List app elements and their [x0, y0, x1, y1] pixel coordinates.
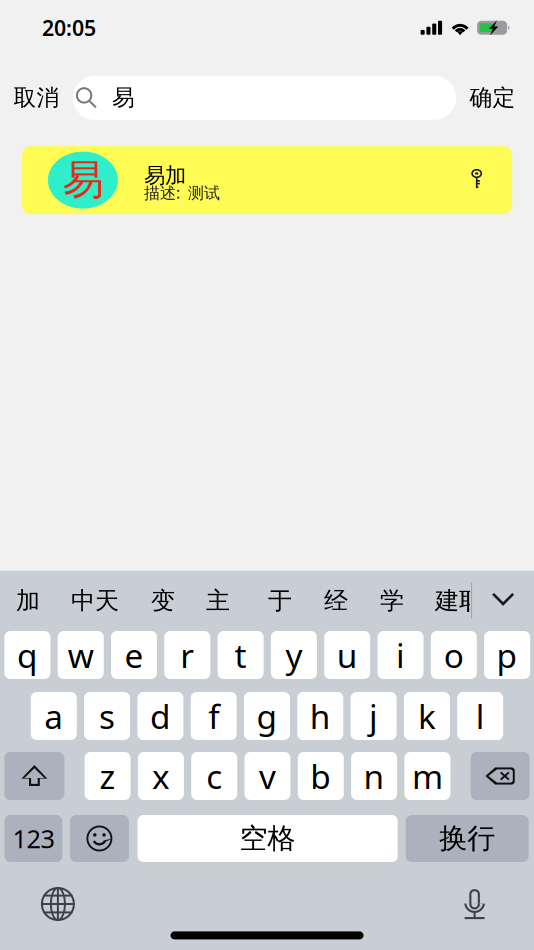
button[interactable]: a	[31, 692, 77, 740]
button[interactable]: o	[431, 631, 477, 679]
staticText: b	[310, 754, 331, 798]
button[interactable]: c	[191, 752, 237, 800]
button[interactable]: Shift	[4, 752, 64, 800]
staticText: 于	[268, 586, 292, 616]
staticText: l	[476, 694, 485, 738]
staticText: 确定	[470, 84, 516, 112]
staticText: o	[444, 633, 464, 677]
button[interactable]: g	[244, 692, 290, 740]
button[interactable]: Next keyboard	[40, 886, 76, 922]
staticText: 加	[16, 586, 40, 616]
button[interactable]: 中天	[71, 581, 151, 621]
staticText: c	[206, 754, 222, 798]
staticText: u	[337, 633, 358, 677]
staticText: 换行	[439, 821, 495, 856]
staticText: i	[396, 633, 405, 677]
staticText: 中天	[71, 586, 119, 616]
staticText: 学	[380, 586, 404, 616]
staticText: t	[235, 633, 247, 677]
staticText: n	[364, 754, 385, 798]
button[interactable]: More candidates	[492, 590, 514, 612]
staticText: 123	[12, 822, 54, 855]
button[interactable]: Emoji	[70, 815, 129, 862]
button[interactable]: 确定	[469, 76, 516, 120]
button[interactable]: 建耶	[435, 581, 470, 621]
staticText: s	[99, 694, 115, 738]
button[interactable]: t	[218, 631, 264, 679]
button[interactable]: 于	[268, 581, 324, 621]
button[interactable]: s	[84, 692, 130, 740]
button[interactable]: 加	[16, 581, 71, 621]
button[interactable]: 123	[4, 815, 62, 862]
button[interactable]: k	[404, 692, 450, 740]
staticText: h	[310, 694, 331, 738]
button[interactable]: j	[351, 692, 397, 740]
button[interactable]: q	[4, 631, 50, 679]
button[interactable]: Delete	[471, 752, 530, 800]
button[interactable]: u	[324, 631, 370, 679]
staticText: 变	[151, 586, 175, 616]
button[interactable]: i	[377, 631, 423, 679]
staticText: x	[152, 754, 170, 798]
button[interactable]: m	[404, 752, 450, 800]
button[interactable]: 易	[22, 146, 512, 214]
button[interactable]: 换行	[406, 815, 529, 862]
button[interactable]: 学	[380, 581, 435, 621]
button[interactable]: d	[137, 692, 183, 740]
staticText: r	[180, 633, 194, 677]
button[interactable]: w	[58, 631, 104, 679]
staticText: z	[100, 754, 116, 798]
button[interactable]: 经	[324, 581, 380, 621]
staticText: e	[124, 633, 143, 677]
button[interactable]: v	[244, 752, 290, 800]
button[interactable]: h	[297, 692, 343, 740]
staticText: v	[259, 754, 276, 798]
button[interactable]: 变	[151, 581, 206, 621]
staticText: y	[285, 633, 302, 677]
button[interactable]: e	[111, 631, 157, 679]
button[interactable]: b	[298, 752, 344, 800]
button[interactable]: 取消	[13, 76, 60, 120]
staticText: 主	[206, 586, 230, 616]
staticText: w	[68, 633, 94, 677]
staticText: 易	[62, 155, 103, 205]
staticText: k	[418, 694, 436, 738]
button[interactable]: n	[351, 752, 397, 800]
button[interactable]: x	[138, 752, 184, 800]
staticText: d	[150, 694, 171, 738]
staticText: 易加	[144, 162, 186, 189]
button[interactable]: 空格	[137, 815, 398, 862]
button[interactable]: r	[164, 631, 210, 679]
button[interactable]: f	[191, 692, 237, 740]
staticText: 空格	[240, 821, 296, 856]
staticText: q	[17, 633, 38, 677]
staticText: j	[369, 694, 378, 738]
button[interactable]: p	[484, 631, 530, 679]
staticText: 易	[112, 84, 135, 112]
staticText: m	[412, 754, 443, 798]
staticText: 20:05	[42, 14, 96, 42]
staticText: f	[208, 694, 219, 738]
staticText: g	[256, 694, 277, 738]
button[interactable]: y	[271, 631, 317, 679]
staticText: a	[44, 694, 63, 738]
button[interactable]: Dictation	[462, 888, 487, 920]
button[interactable]: z	[85, 752, 131, 800]
staticText: 取消	[13, 84, 59, 112]
staticText: 经	[324, 586, 348, 616]
staticText: p	[497, 633, 518, 677]
button[interactable]: 主	[206, 581, 268, 621]
staticText: 描述: 测试	[144, 182, 220, 203]
staticText: 建耶	[435, 586, 483, 616]
button[interactable]: l	[457, 692, 503, 740]
